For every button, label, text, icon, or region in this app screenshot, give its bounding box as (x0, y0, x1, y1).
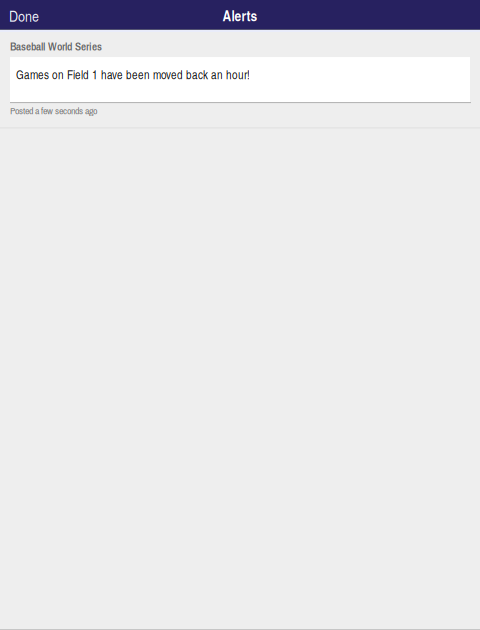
staticText: Done (9, 5, 39, 26)
button[interactable]: Games on Field 1 have been moved back an… (0, 57, 480, 102)
button[interactable]: Done (0, 0, 51, 29)
staticText: Baseball World Series (10, 39, 102, 54)
staticText: Games on Field 1 have been moved back an… (16, 66, 250, 83)
staticText: Posted a few seconds ago (10, 104, 97, 117)
staticText: Alerts (222, 5, 257, 26)
